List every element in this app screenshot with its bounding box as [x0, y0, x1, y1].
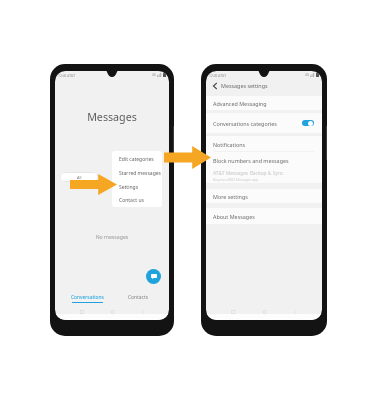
staticText: About Messages	[213, 213, 255, 220]
staticText: 4G	[152, 73, 156, 77]
staticText: 12:45 AT&T	[209, 73, 226, 77]
button[interactable]: Back	[210, 81, 219, 90]
button[interactable]: Back	[138, 307, 147, 316]
button[interactable]: Conversations	[64, 294, 110, 306]
button[interactable]: Starred messages	[112, 166, 162, 180]
button[interactable]: Settings	[112, 180, 162, 194]
button[interactable]: More settings	[206, 189, 322, 203]
staticText: 4G	[305, 73, 309, 77]
staticText: Notifications	[213, 141, 246, 148]
staticText: Contact us	[119, 197, 144, 204]
button[interactable]: Back	[291, 307, 300, 316]
staticText: Messages	[55, 110, 169, 125]
staticText: Requires AT&T Messages app	[213, 177, 259, 181]
staticText: Settings	[119, 184, 139, 191]
button[interactable]: Home	[260, 307, 269, 316]
staticText: Conversations categories	[213, 120, 277, 127]
button[interactable]: About Messages	[206, 208, 322, 224]
button[interactable]: Advanced Messaging	[206, 96, 322, 110]
staticText: 12:45 AT&T	[58, 73, 75, 77]
button[interactable]: Home	[108, 307, 117, 316]
staticText: More settings	[213, 193, 248, 200]
staticText: Messages settings	[221, 82, 268, 89]
button[interactable]: AT&T Messages Backup & Sync	[206, 168, 322, 183]
staticText: Advanced Messaging	[213, 100, 267, 107]
staticText: Conversations	[71, 294, 104, 301]
button[interactable]: Contact us	[112, 194, 162, 207]
button[interactable]: Conversations categories	[206, 113, 322, 133]
staticText: Starred messages	[119, 170, 161, 177]
staticText: All	[77, 175, 82, 180]
button[interactable]: Notifications	[206, 136, 322, 152]
button[interactable]: New conversation	[146, 269, 161, 284]
button[interactable]: Contacts	[118, 294, 159, 306]
button[interactable]: Recents	[228, 307, 237, 316]
staticText: AT&T Messages Backup & Sync	[213, 170, 284, 177]
staticText: Block numbers and messages	[213, 157, 289, 164]
staticText: No messages	[55, 233, 169, 240]
staticText: Contacts	[128, 294, 149, 301]
button[interactable]: Recents	[77, 307, 86, 316]
button[interactable]: All	[60, 172, 98, 182]
staticText: Edit categories	[119, 156, 154, 163]
button[interactable]: Block numbers and messages	[206, 152, 322, 168]
button[interactable]: Edit categories	[112, 152, 162, 166]
